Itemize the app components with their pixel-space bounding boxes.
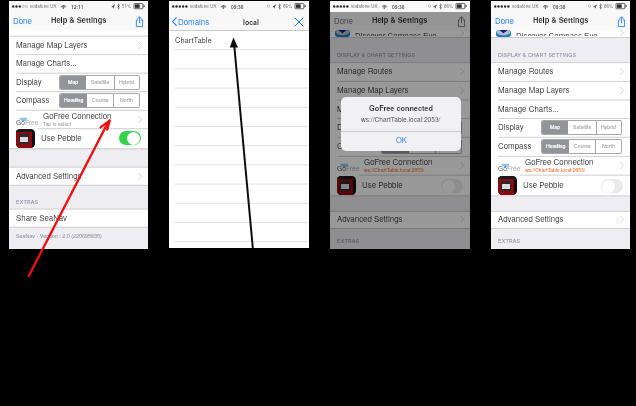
button[interactable]: North bbox=[435, 140, 461, 153]
staticText: GoFree Connection bbox=[525, 156, 594, 167]
staticText: Advanced Settings bbox=[498, 213, 564, 224]
button[interactable]: Heading bbox=[382, 140, 409, 153]
staticText: Help & Settings bbox=[372, 15, 428, 26]
button[interactable]: Go bbox=[491, 156, 630, 175]
button[interactable]: Heading bbox=[542, 140, 569, 153]
staticText: Share SeaNav bbox=[16, 212, 68, 223]
other: Share bbox=[458, 16, 465, 27]
staticText: SeaNav - Version : 2.0 (220695835) bbox=[16, 232, 102, 240]
button[interactable]: Display bbox=[330, 118, 470, 137]
button[interactable]: Course bbox=[569, 140, 595, 153]
staticText: Go bbox=[16, 117, 25, 127]
button[interactable]: North bbox=[595, 140, 621, 153]
button[interactable]: Manage Map Layers bbox=[330, 81, 470, 100]
staticText: Done bbox=[495, 15, 514, 26]
button[interactable]: Compass bbox=[491, 137, 630, 156]
staticText: DISPLAY & CHART SETTINGS bbox=[337, 51, 416, 59]
staticText: 09:38 bbox=[553, 3, 566, 10]
staticText: North bbox=[120, 96, 133, 103]
button[interactable]: Map bbox=[60, 76, 86, 89]
button[interactable]: Manage Charts... bbox=[9, 54, 148, 73]
staticText: DISPLAY & CHART SETTINGS bbox=[498, 51, 577, 59]
staticText: Free bbox=[25, 117, 39, 127]
staticText: 86% bbox=[283, 3, 293, 10]
button[interactable]: Map bbox=[542, 121, 568, 134]
staticText: Display bbox=[337, 121, 363, 132]
staticText: 86% bbox=[604, 3, 614, 10]
staticText: 09:38 bbox=[392, 3, 405, 10]
button[interactable]: Manage Map Layers bbox=[491, 81, 630, 100]
button[interactable]: Done bbox=[332, 12, 355, 29]
staticText: vodafone UK bbox=[190, 3, 217, 10]
button[interactable]: Use Pebble bbox=[491, 175, 630, 196]
button[interactable]: Course bbox=[87, 94, 113, 107]
button[interactable]: Use Pebble bbox=[9, 128, 148, 148]
button[interactable]: Manage Routes bbox=[330, 62, 470, 81]
staticText: ws://ChartTable.local:2053/ bbox=[364, 166, 425, 173]
staticText: Display bbox=[16, 76, 42, 87]
staticText: ws://ChartTable.local:2053/ bbox=[525, 166, 586, 173]
staticText: Done bbox=[334, 15, 353, 26]
button[interactable]: Manage Map Layers bbox=[9, 36, 148, 55]
button[interactable]: Compass bbox=[9, 91, 148, 110]
staticText: Manage Map Layers bbox=[498, 84, 570, 95]
button[interactable]: OK bbox=[341, 132, 461, 151]
button[interactable]: Share SeaNav bbox=[9, 209, 148, 227]
staticText: Manage Routes bbox=[337, 65, 393, 76]
button[interactable]: Turn on bbox=[601, 179, 623, 193]
staticText: Display bbox=[498, 121, 524, 132]
button[interactable]: Hybrid bbox=[596, 121, 621, 134]
button[interactable]: North bbox=[113, 94, 139, 107]
button[interactable]: Turn on bbox=[441, 179, 463, 193]
staticText: Hybrid bbox=[119, 78, 134, 85]
button[interactable]: Go bbox=[9, 110, 148, 129]
button[interactable]: Done bbox=[493, 12, 516, 29]
button[interactable]: Advanced Settings bbox=[9, 167, 148, 185]
staticText: 09:38 bbox=[231, 3, 244, 10]
staticText: Advanced Settings bbox=[16, 170, 82, 181]
button[interactable]: Share bbox=[134, 14, 145, 29]
staticText: vodafone UK bbox=[351, 3, 378, 10]
button[interactable]: Done bbox=[11, 12, 34, 29]
button[interactable]: Manage Charts... bbox=[491, 100, 630, 119]
staticText: Manage Map Layers bbox=[337, 84, 409, 95]
button[interactable]: Display bbox=[9, 73, 148, 92]
button[interactable]: Satellite bbox=[86, 76, 114, 89]
button[interactable]: Compass bbox=[330, 137, 470, 156]
button[interactable]: Advanced Settings bbox=[330, 211, 470, 228]
button[interactable]: ChartTable bbox=[169, 30, 309, 49]
staticText: 51% bbox=[122, 3, 132, 10]
button[interactable]: Satellite bbox=[408, 121, 436, 134]
staticText: Heading bbox=[64, 96, 84, 103]
button[interactable]: Satellite bbox=[568, 121, 596, 134]
staticText: Discover Compass Eye bbox=[516, 30, 598, 36]
button[interactable]: Hybrid bbox=[436, 121, 461, 134]
staticText: Manage Charts... bbox=[16, 57, 77, 68]
button[interactable]: Use Pebble bbox=[330, 175, 470, 196]
button[interactable]: Share bbox=[456, 14, 467, 29]
staticText: ws://ChartTable.local:2053/ bbox=[361, 114, 441, 123]
staticText: North bbox=[602, 142, 615, 149]
button[interactable]: Map bbox=[382, 121, 408, 134]
button[interactable]: Close bbox=[293, 16, 305, 28]
button[interactable]: Advanced Settings bbox=[491, 211, 630, 228]
button[interactable]: Discover Compass Eye bbox=[330, 30, 470, 37]
button[interactable]: Go bbox=[330, 156, 470, 175]
button[interactable]: Hybrid bbox=[114, 76, 139, 89]
button[interactable]: Display bbox=[491, 118, 630, 137]
button[interactable]: Domains bbox=[172, 13, 210, 30]
staticText: Done bbox=[13, 15, 32, 26]
staticText: Course bbox=[92, 96, 109, 103]
staticText: Help & Settings bbox=[533, 15, 589, 26]
button[interactable]: Discover Compass Eye bbox=[491, 30, 630, 37]
staticText: Course bbox=[574, 142, 591, 149]
button[interactable]: Manage Routes bbox=[491, 62, 630, 81]
button[interactable]: Manage Charts... bbox=[330, 100, 470, 119]
button[interactable]: Turn off bbox=[119, 131, 141, 145]
staticText: Use Pebble bbox=[362, 179, 403, 190]
button[interactable]: Heading bbox=[60, 94, 87, 107]
button[interactable]: Share bbox=[616, 14, 627, 29]
button[interactable]: Course bbox=[409, 140, 435, 153]
